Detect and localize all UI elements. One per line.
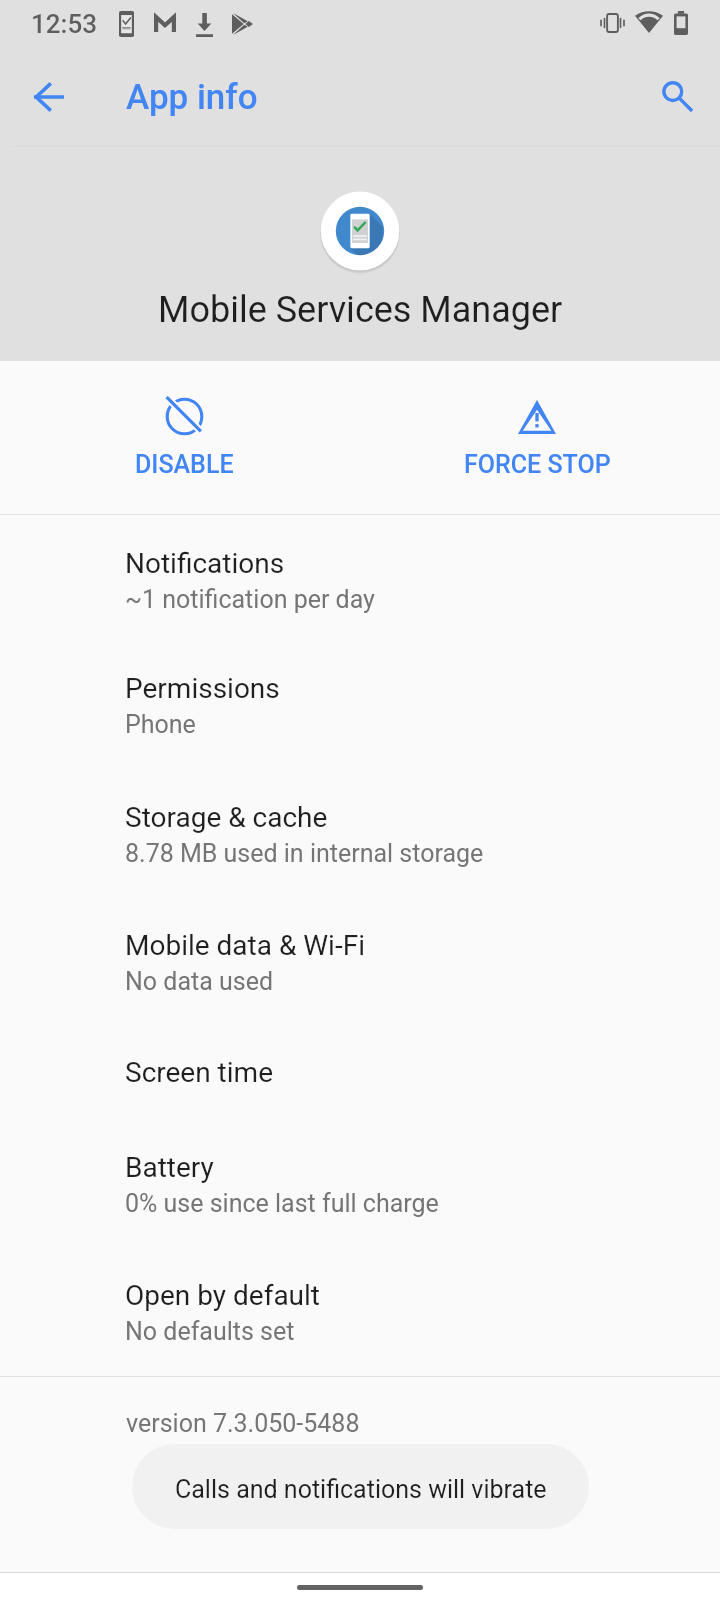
staticText: Mobile data & Wi-Fi [125, 929, 365, 962]
staticText: ~1 notification per day [125, 585, 375, 614]
button[interactable]: Calls and notifications will vibrate [132, 1444, 589, 1529]
button[interactable]: Search [637, 61, 709, 133]
staticText: No data used [125, 967, 274, 996]
staticText: 0% use since last full charge [125, 1189, 439, 1218]
staticText: Storage & cache [125, 801, 328, 834]
button[interactable]: Screen time [0, 1024, 720, 1118]
staticText: Battery [125, 1151, 214, 1184]
button[interactable]: DISABLE [0, 361, 360, 514]
staticText: 8.78 MB used in internal storage [125, 839, 484, 868]
staticText: DISABLE [135, 450, 234, 479]
staticText: FORCE STOP [464, 450, 611, 479]
staticText: Screen time [125, 1056, 273, 1089]
staticText: Mobile Services Manager [158, 289, 563, 331]
staticText: Phone [125, 710, 196, 739]
staticText: Calls and notifications will vibrate [175, 1475, 547, 1504]
staticText: No defaults set [125, 1317, 295, 1346]
button[interactable]: Back [13, 61, 85, 133]
staticText: Open by default [125, 1279, 321, 1312]
staticText: Permissions [125, 672, 280, 705]
staticText: 12:53 [31, 9, 97, 39]
button[interactable]: Storage & cache [0, 769, 720, 897]
button[interactable]: Permissions [0, 640, 720, 768]
button[interactable]: FORCE STOP [360, 361, 720, 514]
staticText: App info [126, 77, 258, 118]
button[interactable]: Mobile data & Wi-Fi [0, 897, 720, 1025]
button[interactable]: Battery [0, 1119, 720, 1247]
staticText: Notifications [125, 547, 285, 580]
button[interactable]: Notifications [0, 515, 720, 643]
button[interactable]: Open by default [0, 1247, 720, 1375]
staticText: version 7.3.050-5488 [126, 1409, 360, 1438]
